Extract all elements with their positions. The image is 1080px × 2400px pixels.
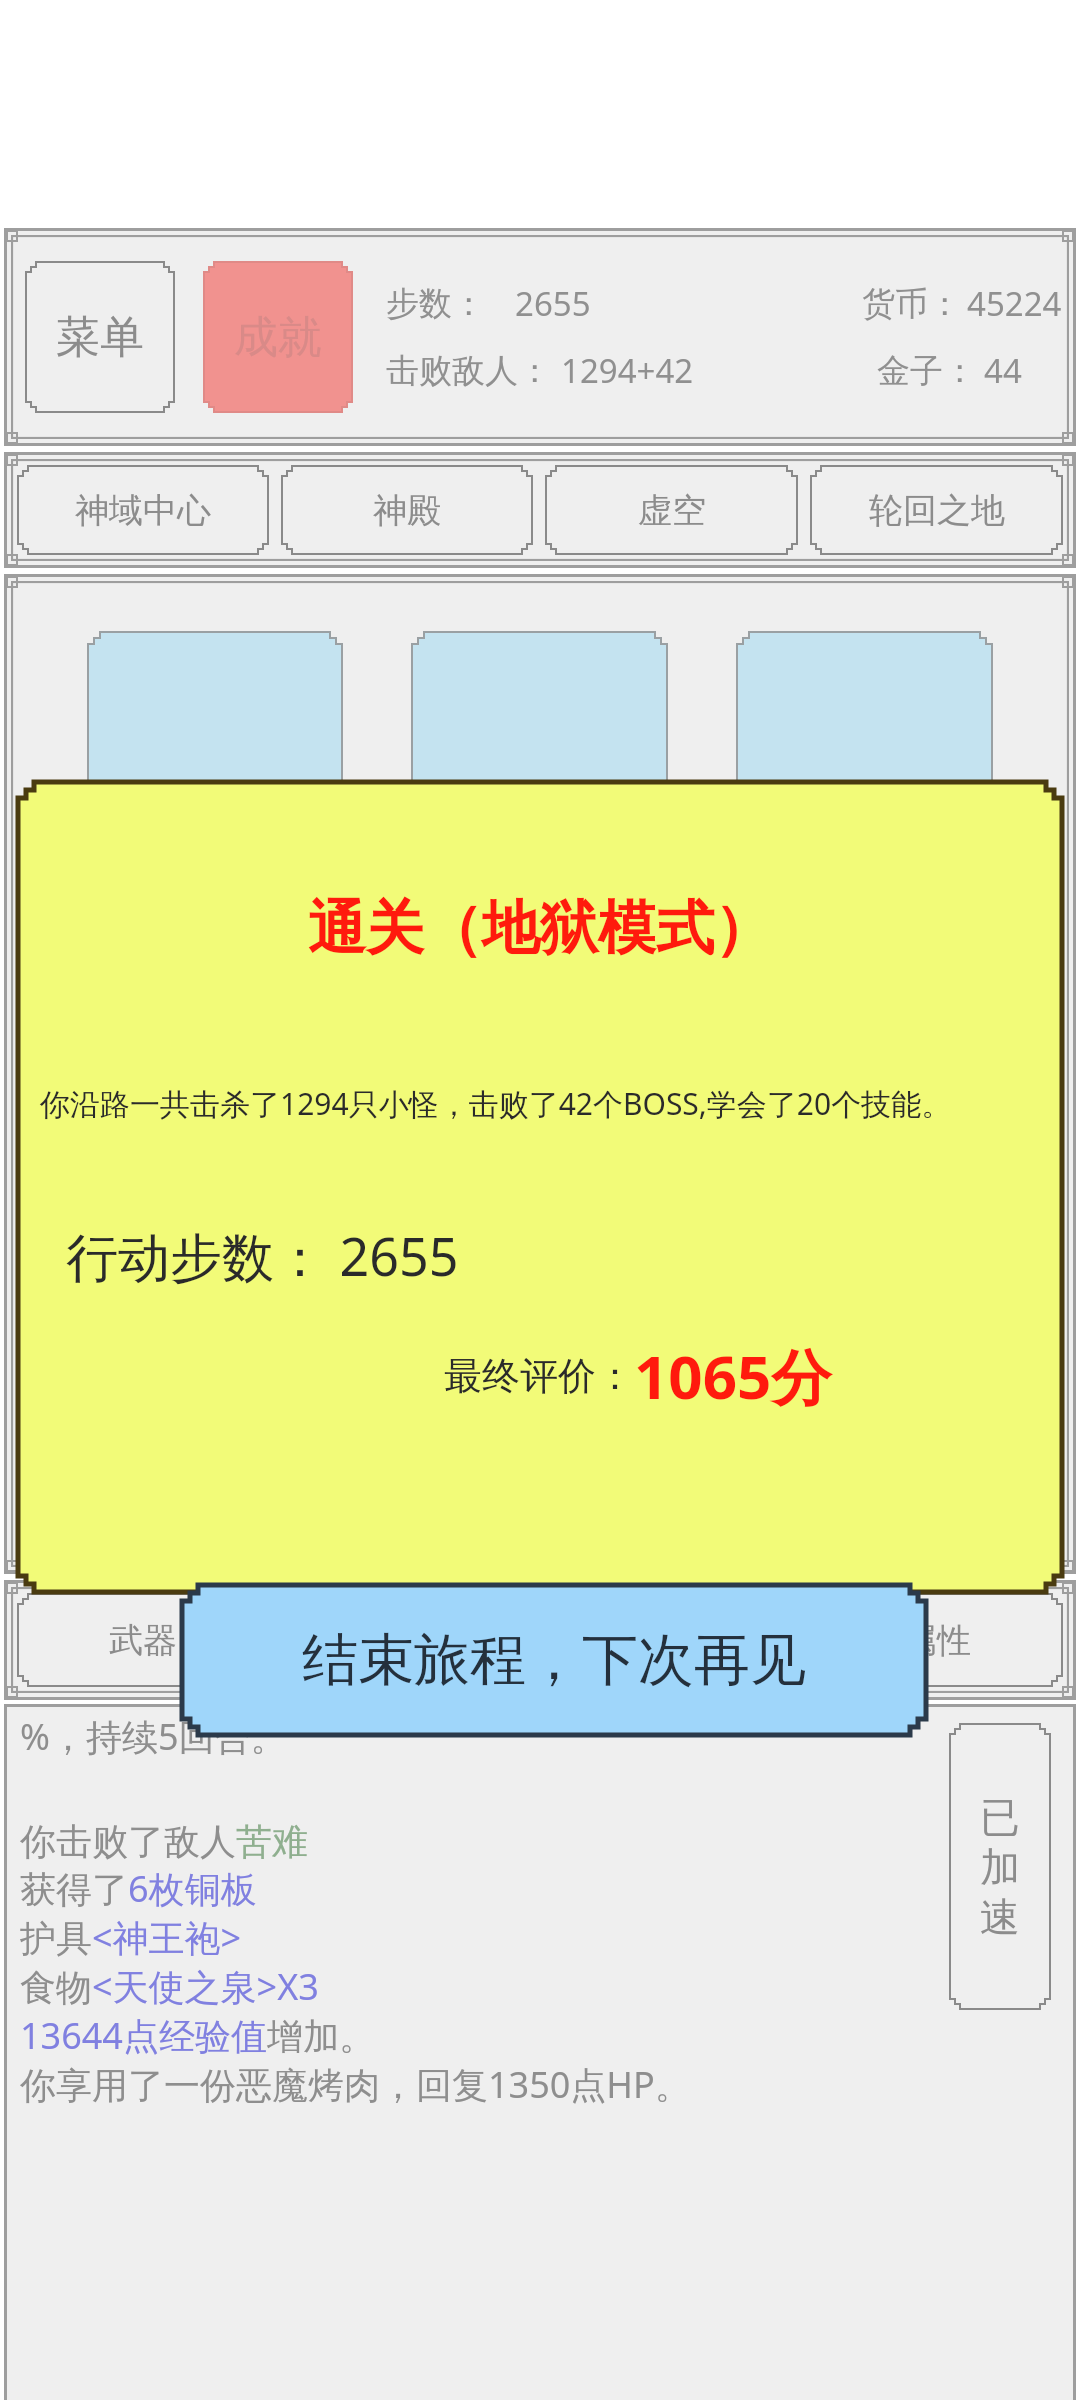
staticText: 步数： — [386, 283, 485, 325]
staticText: 获得了6枚铜板 — [20, 1864, 257, 1913]
button[interactable]: 空地 — [737, 632, 992, 882]
button[interactable]: 虚空 — [546, 466, 797, 554]
staticText: 轮回之地 — [869, 489, 1005, 532]
staticText: 通关（地狱模式） — [18, 892, 1062, 965]
staticText: 1294+42 — [561, 348, 694, 393]
staticText: 结束旅程，下次再见 — [302, 1625, 806, 1696]
staticText: 1065分 — [634, 1335, 832, 1417]
staticText: 你击败了敌人苦难 — [20, 1819, 308, 1864]
staticText: 防具 — [373, 1619, 441, 1662]
button[interactable]: 已 — [950, 1724, 1050, 2009]
staticText: 44 — [984, 348, 1022, 393]
button[interactable]: 空地 — [88, 632, 342, 882]
staticText: 神域中心 — [75, 489, 211, 532]
staticText: 武器 — [109, 1619, 177, 1662]
staticText: 菜单 — [56, 310, 144, 365]
button[interactable]: 结束旅程，下次再见 — [182, 1585, 926, 1735]
staticText: 货币： — [862, 283, 961, 325]
staticText: 神殿 — [373, 489, 441, 532]
staticText: 你沿路一共击杀了1294只小怪，击败了42个BOSS,学会了20个技能。 — [40, 1083, 1040, 1124]
staticText: 45224 — [967, 281, 1062, 326]
staticText: 你享用了一份恶魔烤肉，回复1350点HP。 — [20, 2060, 691, 2109]
staticText: 金子： — [877, 350, 976, 392]
button[interactable]: 武器 — [18, 1594, 268, 1686]
staticText: 属性 — [903, 1619, 971, 1662]
staticText: 成就 — [234, 310, 322, 365]
button[interactable]: 神殿 — [282, 466, 532, 554]
staticText: %，持续5回合。 — [20, 1712, 287, 1761]
staticText: 已 — [980, 1792, 1020, 1842]
button[interactable]: 轮回之地 — [811, 466, 1062, 554]
staticText: 2655 — [515, 281, 591, 326]
staticText: 击败敌人： — [386, 350, 551, 392]
button[interactable]: 空地 — [412, 632, 667, 882]
staticText: 最终评价： — [444, 1352, 634, 1400]
staticText: 虚空 — [638, 489, 706, 532]
staticText: 加 — [980, 1842, 1020, 1892]
staticText: 道具 — [638, 1619, 706, 1662]
button[interactable]: 属性 — [811, 1594, 1062, 1686]
button[interactable]: 道具 — [546, 1594, 797, 1686]
staticText: 食物<天使之泉>X3 — [20, 1962, 319, 2011]
button[interactable]: 成就 — [204, 262, 352, 412]
staticText: 行动步数： 2655 — [66, 1220, 459, 1291]
button[interactable]: 菜单 — [26, 262, 174, 412]
staticText: 速 — [980, 1892, 1020, 1942]
button[interactable]: 神域中心 — [18, 466, 268, 554]
button[interactable]: 防具 — [282, 1594, 532, 1686]
staticText: 护具<神王袍> — [20, 1913, 242, 1962]
staticText: 13644点经验值增加。 — [20, 2011, 375, 2060]
